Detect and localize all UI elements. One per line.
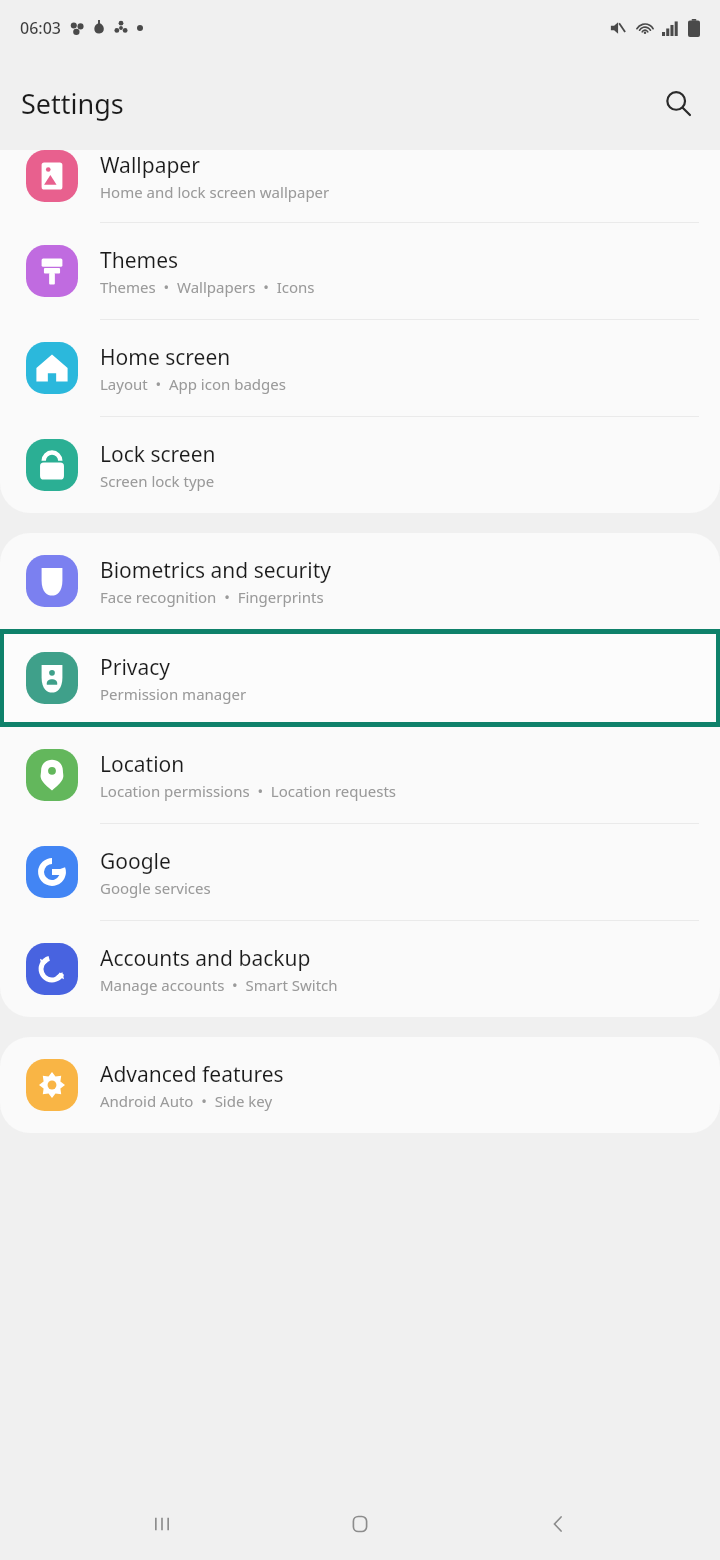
staticText: Settings (21, 85, 124, 122)
staticText: Advanced features (100, 1060, 284, 1089)
button[interactable]: Recent apps (126, 1488, 198, 1560)
staticText: Google services (100, 878, 211, 898)
staticText: Location permissions • Location requests (100, 781, 397, 801)
button[interactable]: Lock screen (0, 417, 720, 513)
button[interactable]: Home screen (0, 320, 720, 416)
staticText: Home and lock screen wallpaper (100, 182, 330, 202)
staticText: Themes • Wallpapers • Icons (100, 277, 315, 297)
staticText: Manage accounts • Smart Switch (100, 975, 338, 995)
staticText: Home screen (100, 343, 231, 372)
staticText: Wallpaper (100, 151, 200, 180)
staticText: Permission manager (100, 684, 247, 704)
staticText: Privacy (100, 653, 171, 682)
button[interactable]: Privacy (4, 634, 716, 722)
staticText: Accounts and backup (100, 944, 311, 973)
button[interactable]: Wallpaper (0, 150, 720, 222)
button[interactable]: Accounts and backup (0, 921, 720, 1017)
staticText: Themes (100, 246, 179, 275)
staticText: Biometrics and security (100, 556, 331, 585)
button[interactable]: Biometrics and security (0, 533, 720, 629)
button[interactable]: Search settings (650, 75, 706, 131)
staticText: Lock screen (100, 440, 216, 469)
button[interactable]: Google (0, 824, 720, 920)
button[interactable]: Back (522, 1488, 594, 1560)
button[interactable]: Themes (0, 223, 720, 319)
button[interactable]: Advanced features (0, 1037, 720, 1133)
staticText: Screen lock type (100, 471, 215, 491)
staticText: Face recognition • Fingerprints (100, 587, 324, 607)
staticText: 06:03 (20, 17, 61, 39)
staticText: Google (100, 847, 171, 876)
staticText: Layout • App icon badges (100, 374, 286, 394)
staticText: Location (100, 750, 185, 779)
staticText: Android Auto • Side key (100, 1091, 273, 1111)
button[interactable]: Location (0, 727, 720, 823)
button[interactable]: Home (324, 1488, 396, 1560)
